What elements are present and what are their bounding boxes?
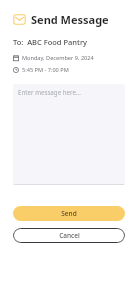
staticText: Enter message here... (18, 88, 81, 96)
other: Message (13, 13, 26, 26)
staticText: Send Message (31, 12, 109, 27)
staticText: 5:45 PM - 7:00 PM (22, 66, 69, 74)
button[interactable]: Enter message here... (13, 84, 125, 185)
button[interactable]: Send (13, 206, 125, 221)
staticText: To: ABC Food Pantry (13, 37, 88, 47)
staticText: Send (61, 209, 77, 218)
button[interactable]: Cancel (13, 228, 125, 243)
staticText: Cancel (59, 231, 80, 240)
staticText: Monday, December 9, 2024 (22, 54, 94, 62)
